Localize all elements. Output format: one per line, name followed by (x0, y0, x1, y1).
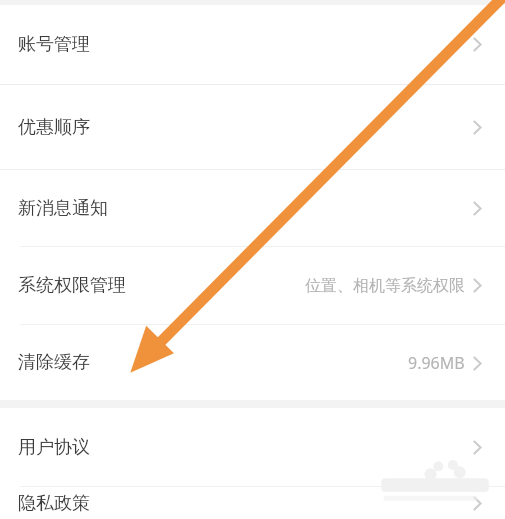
staticText: 优惠顺序 (18, 116, 90, 139)
button[interactable]: 用户协议 (0, 408, 505, 486)
button[interactable]: 隐私政策 (0, 487, 505, 519)
button[interactable]: 系统权限管理 (0, 247, 505, 324)
staticText: 位置、相机等系统权限 (305, 276, 465, 296)
staticText: 清除缓存 (18, 351, 90, 374)
staticText: 账号管理 (18, 33, 90, 56)
button[interactable]: 优惠顺序 (0, 85, 505, 169)
button[interactable]: 新消息通知 (0, 170, 505, 246)
staticText: 新消息通知 (18, 197, 108, 220)
staticText: 隐私政策 (18, 492, 90, 515)
staticText: 系统权限管理 (18, 274, 126, 297)
staticText: 用户协议 (18, 436, 90, 459)
button[interactable]: 清除缓存 (0, 325, 505, 400)
staticText: 9.96MB (408, 352, 465, 374)
button[interactable]: 账号管理 (0, 5, 505, 84)
